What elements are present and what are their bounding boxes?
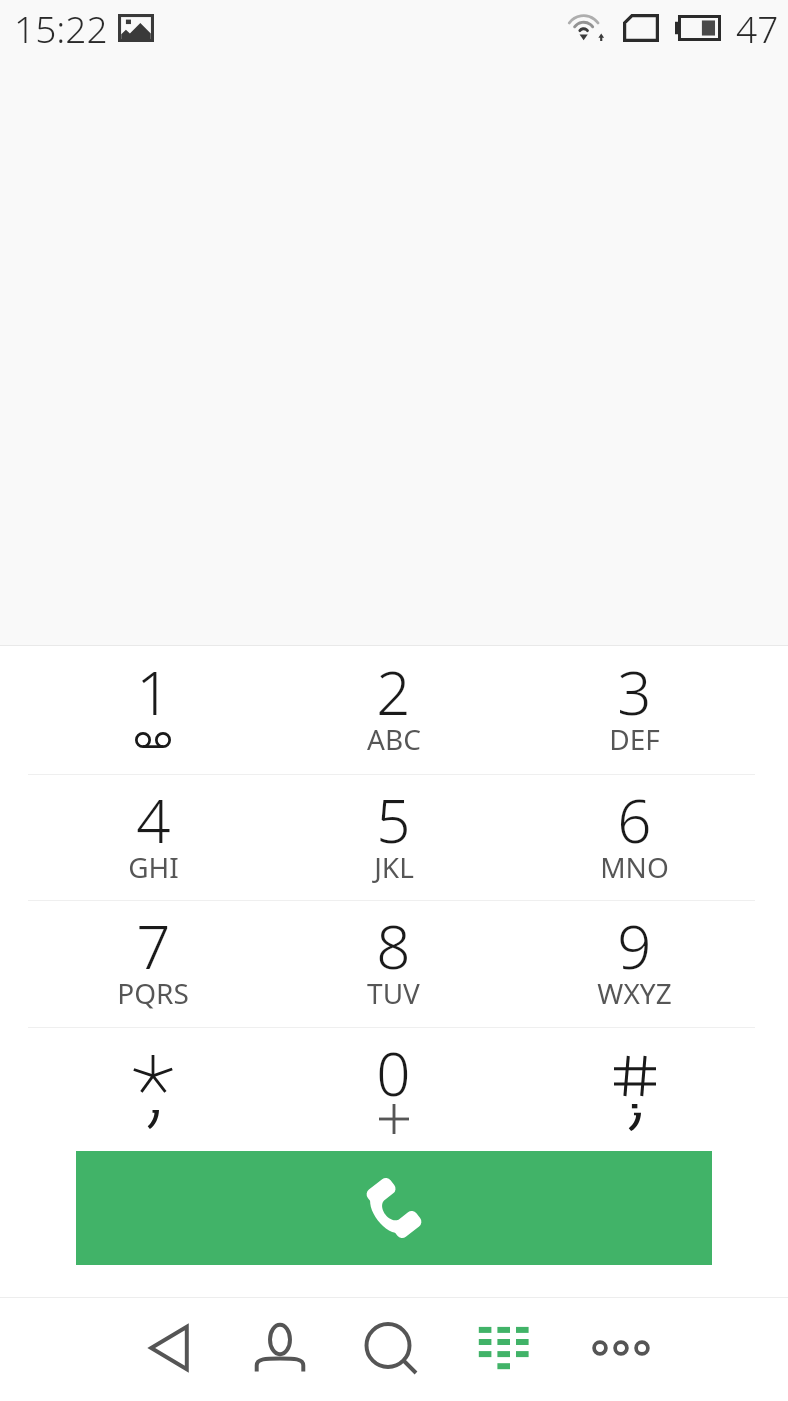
staticText: TUV bbox=[367, 974, 420, 1012]
staticText: 7 bbox=[136, 905, 171, 987]
button[interactable] bbox=[514, 1027, 755, 1151]
staticText: JKL bbox=[374, 848, 414, 886]
staticText: 0 bbox=[376, 1032, 411, 1114]
staticText: MNO bbox=[600, 848, 669, 886]
button[interactable]: 6 bbox=[514, 774, 755, 900]
button[interactable]: More bbox=[577, 1304, 665, 1392]
button[interactable]: Back bbox=[125, 1304, 213, 1392]
staticText: 5 bbox=[376, 779, 411, 861]
button[interactable]: 1 bbox=[33, 646, 273, 774]
button[interactable]: 7 bbox=[33, 900, 273, 1027]
staticText: WXYZ bbox=[597, 974, 672, 1012]
button[interactable]: Search bbox=[347, 1304, 435, 1392]
staticText: ABC bbox=[367, 720, 421, 758]
button[interactable] bbox=[33, 1027, 273, 1151]
staticText: 4 bbox=[136, 779, 171, 861]
staticText: 1 bbox=[136, 651, 171, 733]
button[interactable]: 8 bbox=[273, 900, 514, 1027]
staticText: 47 bbox=[736, 3, 779, 53]
button[interactable]: 3 bbox=[514, 646, 755, 774]
staticText: 6 bbox=[617, 779, 652, 861]
button[interactable]: 0 bbox=[273, 1027, 514, 1151]
staticText: 15:22 bbox=[14, 3, 108, 53]
staticText: DEF bbox=[609, 720, 660, 758]
staticText: 8 bbox=[376, 905, 411, 987]
staticText: GHI bbox=[128, 848, 179, 886]
button[interactable]: Dialpad bbox=[460, 1304, 548, 1392]
button[interactable]: Contacts bbox=[236, 1304, 324, 1392]
button[interactable]: Call bbox=[76, 1151, 712, 1265]
button[interactable]: 5 bbox=[273, 774, 514, 900]
button[interactable]: 2 bbox=[273, 646, 514, 774]
staticText: 9 bbox=[617, 905, 652, 987]
button[interactable]: 9 bbox=[514, 900, 755, 1027]
staticText: 2 bbox=[376, 651, 411, 733]
staticText: 3 bbox=[617, 651, 652, 733]
staticText: PQRS bbox=[117, 974, 189, 1012]
button[interactable]: 4 bbox=[33, 774, 273, 900]
